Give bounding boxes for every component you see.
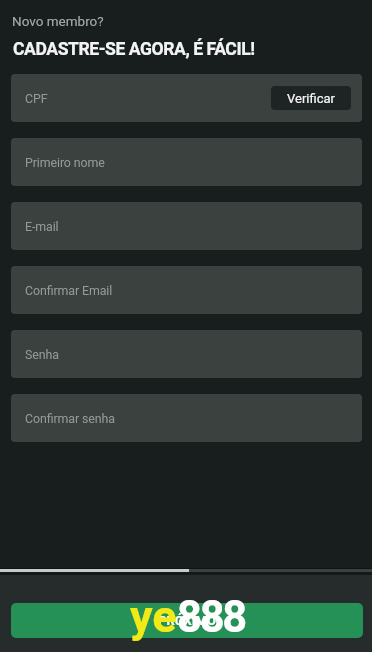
button[interactable]: Confirmar senha	[11, 394, 362, 442]
staticText: ye	[130, 590, 177, 643]
staticText: PRÓXIMO	[158, 613, 216, 628]
button[interactable]: PRÓXIMO	[11, 603, 363, 638]
button[interactable]: Primeiro nome	[11, 138, 362, 186]
button[interactable]: Verificar	[271, 86, 351, 110]
staticText: Confirmar senha	[25, 411, 115, 426]
staticText: 888	[177, 592, 245, 643]
staticText: Verificar	[287, 91, 335, 106]
staticText: Confirmar Email	[25, 283, 113, 298]
button[interactable]: Senha	[11, 330, 362, 378]
staticText: CADASTRE-SE AGORA, É FÁCIL!	[13, 39, 255, 60]
staticText: Senha	[25, 347, 59, 362]
staticText: Novo membro?	[12, 13, 104, 29]
button[interactable]: Confirmar Email	[11, 266, 362, 314]
staticText: CPF	[25, 91, 48, 106]
button[interactable]: E-mail	[11, 202, 362, 250]
staticText: Primeiro nome	[25, 155, 105, 170]
button[interactable]: CPF	[11, 74, 362, 122]
staticText: E-mail	[25, 219, 59, 234]
